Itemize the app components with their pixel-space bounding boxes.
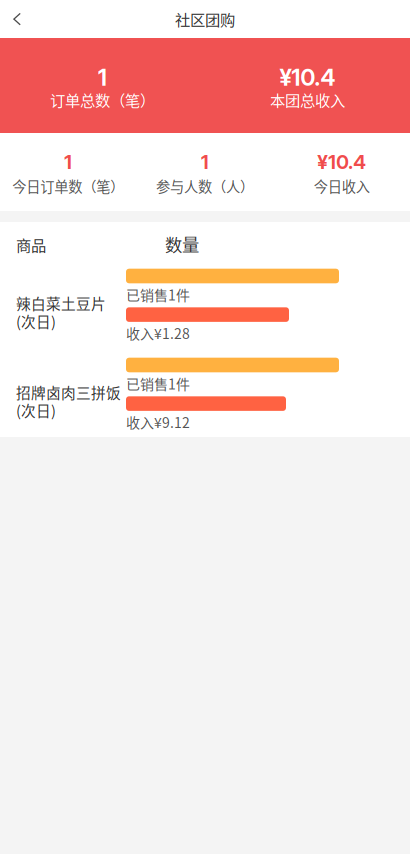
staticText: (次日) [16,310,56,332]
staticText: 1 [98,64,107,91]
staticText: 今日收入 [314,176,370,196]
staticText: 社区团购 [175,8,235,30]
staticText: 收入¥9.12 [126,412,190,432]
staticText: ¥10.4 [279,64,335,91]
staticText: (次日) [16,399,56,421]
staticText: 今日订单数（笔） [12,176,124,196]
staticText: 辣白菜土豆片 [16,292,106,314]
staticText: 1 [64,150,72,174]
button[interactable]: 辣白菜土豆片 [0,255,410,344]
staticText: 收入¥1.28 [126,323,190,343]
staticText: 商品 [16,233,46,256]
button[interactable]: 招牌卤肉三拼饭 [0,344,410,433]
staticText: 招牌卤肉三拼饭 [16,381,121,403]
staticText: 已销售1件 [126,373,190,393]
staticText: 1 [201,150,209,174]
staticText: ¥10.4 [317,150,366,174]
staticText: 数量 [165,231,199,257]
staticText: 本团总收入 [270,88,345,111]
staticText: 订单总数（笔） [50,88,155,111]
staticText: 参与人数（人） [156,176,254,196]
staticText: 已销售1件 [126,284,190,304]
button[interactable]: Back [0,0,34,38]
